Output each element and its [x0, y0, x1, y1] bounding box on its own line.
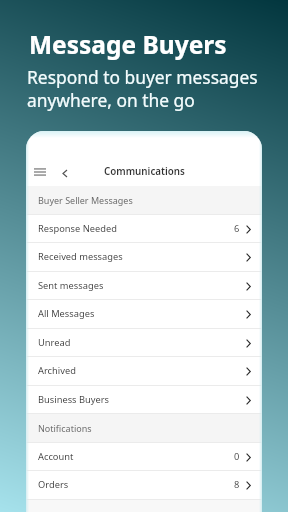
staticText: 0	[234, 450, 240, 463]
staticText: Respond to buyer messages anywhere, on t…	[27, 65, 258, 112]
button[interactable]: Menu	[30, 162, 50, 182]
button[interactable]: Orders	[26, 471, 262, 500]
staticText: All Messages	[38, 307, 95, 320]
staticText: Received messages	[38, 250, 123, 263]
button[interactable]: Received messages	[26, 243, 262, 272]
staticText: 8	[234, 478, 240, 491]
button[interactable]: Account	[26, 443, 262, 472]
staticText: Notifications	[38, 422, 92, 434]
button[interactable]: Sent messages	[26, 272, 262, 301]
staticText: 6	[234, 222, 240, 235]
button[interactable]: Response Needed	[26, 215, 262, 244]
button[interactable]: All Messages	[26, 300, 262, 329]
staticText: Buyer Seller Messages	[38, 194, 133, 206]
button[interactable]: Business Buyers	[26, 386, 262, 415]
staticText: Sent messages	[38, 279, 104, 292]
staticText: Unread	[38, 336, 71, 349]
staticText: Communications	[104, 165, 185, 178]
staticText: Archived	[38, 364, 76, 377]
staticText: Message Buyers	[29, 28, 227, 61]
staticText: Response Needed	[38, 222, 117, 235]
staticText: Orders	[38, 478, 69, 491]
staticText: Account	[38, 450, 74, 463]
button[interactable]: Back	[55, 163, 75, 183]
staticText: Business Buyers	[38, 393, 110, 406]
button[interactable]: Archived	[26, 357, 262, 386]
button[interactable]: Unread	[26, 329, 262, 358]
